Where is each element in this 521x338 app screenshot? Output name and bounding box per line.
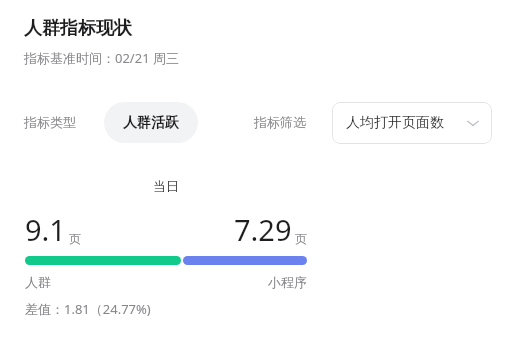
staticText: 指标类型	[24, 114, 76, 130]
staticText: 指标筛选	[254, 114, 306, 130]
button[interactable]: 人均打开页面数	[332, 102, 492, 144]
staticText: 当日	[153, 178, 179, 194]
staticText: 7.29	[234, 210, 292, 249]
staticText: 页	[69, 231, 81, 246]
staticText: 差值：1.81（24.77%)	[25, 300, 151, 318]
staticText: 小程序	[268, 274, 307, 290]
staticText: 人群活跃	[123, 114, 179, 132]
staticText: 人群指标现状	[24, 17, 132, 40]
button[interactable]: 人群活跃	[104, 102, 198, 143]
staticText: 指标基准时间：02/21 周三	[24, 49, 179, 67]
staticText: 人群	[25, 274, 51, 290]
staticText: 9.1	[25, 210, 66, 249]
staticText: 人均打开页面数	[346, 114, 444, 132]
other: 展开选项	[466, 116, 480, 130]
staticText: 页	[295, 231, 307, 246]
